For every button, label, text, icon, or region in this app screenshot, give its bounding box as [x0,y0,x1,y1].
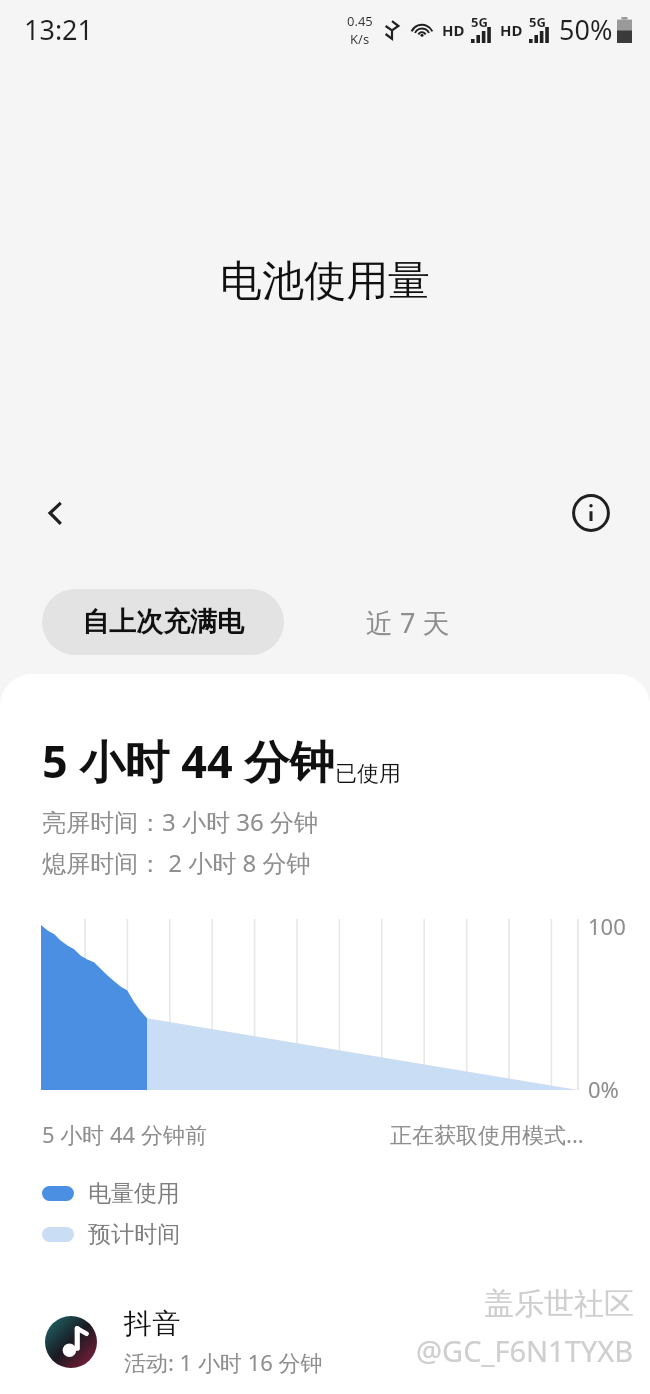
staticText: 100 [588,911,626,941]
staticText: 13:21 [24,11,94,48]
staticText: 5G [529,13,546,31]
staticText: 预计时间 [88,1220,180,1249]
staticText: 0% [588,1074,619,1104]
staticText: 电池使用量 [220,255,430,308]
button[interactable]: 返回 [30,487,82,539]
staticText: 正在获取使用模式... [390,1119,584,1149]
button[interactable]: 自上次充满电 [42,589,284,655]
staticText: 亮屏时间：3 小时 36 分钟 [42,805,318,838]
staticText: 熄屏时间： 2 小时 8 分钟 [42,846,311,879]
staticText: @GC_F6N1TYXB [416,1331,634,1370]
button[interactable]: 近 7 天 [336,589,480,655]
staticText: HD [500,20,523,40]
staticText: 5G [471,13,488,31]
staticText: 电量使用 [88,1179,180,1208]
staticText: 近 7 天 [366,604,450,641]
button[interactable]: 信息 [565,487,617,539]
staticText: 自上次充满电 [82,605,244,639]
staticText: 盖乐世社区 [484,1285,634,1323]
staticText: 已使用 [335,760,401,788]
staticText: HD [442,20,465,40]
staticText: 50% [559,11,613,48]
staticText: 抖音 [124,1306,180,1341]
staticText: 5 小时 44 分钟 [42,730,335,791]
staticText: K/s [350,30,370,48]
staticText: 活动: 1 小时 16 分钟 [124,1347,323,1377]
staticText: 0.45 [347,12,373,30]
button[interactable]: 抖音 [0,1289,650,1394]
staticText: 5 小时 44 分钟前 [42,1119,207,1149]
